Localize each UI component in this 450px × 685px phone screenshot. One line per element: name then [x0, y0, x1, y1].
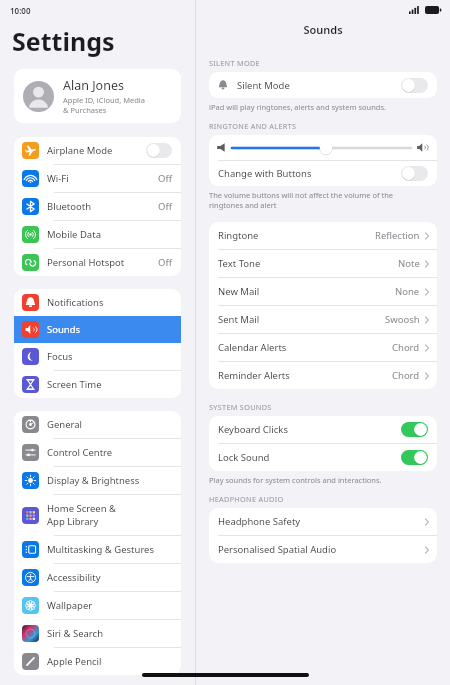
staticText: Multitasking & Gestures: [47, 543, 155, 556]
staticText: Sounds: [47, 323, 81, 336]
staticText: Focus: [47, 350, 73, 363]
staticText: Chord: [392, 341, 420, 354]
staticText: None: [395, 285, 420, 298]
staticText: Swoosh: [385, 313, 420, 326]
staticText: iPad will play ringtones, alerts and sys…: [209, 102, 387, 112]
button[interactable]: Multitasking & Gestures: [14, 536, 181, 563]
staticText: Airplane Mode: [47, 144, 113, 157]
staticText: Siri & Search: [47, 627, 104, 640]
button[interactable]: Toggle on: [401, 422, 428, 437]
button[interactable]: Calendar Alerts: [209, 334, 437, 361]
staticText: Silent Mode: [237, 79, 290, 92]
button[interactable]: Wallpaper: [14, 592, 181, 619]
staticText: App Library: [47, 515, 99, 528]
staticText: Wallpaper: [47, 599, 93, 612]
button[interactable]: Ringtone: [209, 222, 437, 249]
button[interactable]: Bluetooth: [14, 193, 181, 220]
button[interactable]: Wi-Fi: [14, 165, 181, 192]
staticText: Alan Jones: [63, 77, 124, 94]
button[interactable]: Change with Buttons: [209, 161, 437, 186]
staticText: Screen Time: [47, 378, 102, 391]
staticText: The volume buttons will not affect the v…: [209, 190, 394, 200]
staticText: Reflection: [375, 229, 420, 242]
staticText: General: [47, 418, 83, 431]
button[interactable]: Airplane Mode: [14, 137, 181, 164]
button[interactable]: Toggle off: [401, 78, 428, 93]
staticText: Ringtone: [218, 229, 259, 242]
button[interactable]: Notifications: [14, 289, 181, 316]
staticText: Display & Brightness: [47, 474, 140, 487]
staticText: SILENT MODE: [209, 58, 260, 68]
staticText: Headphone Safety: [218, 515, 301, 528]
button[interactable]: Toggle on: [401, 450, 428, 465]
staticText: Change with Buttons: [218, 167, 312, 180]
staticText: Lock Sound: [218, 451, 270, 464]
button[interactable]: Alan Jones: [14, 69, 181, 123]
staticText: ringtones and alert: [209, 200, 277, 210]
button[interactable]: Control Centre: [14, 439, 181, 466]
staticText: Calendar Alerts: [218, 341, 287, 354]
button[interactable]: Text Tone: [209, 250, 437, 277]
button[interactable]: Headphone Safety: [209, 508, 437, 535]
staticText: Reminder Alerts: [218, 369, 290, 382]
button[interactable]: General: [14, 411, 181, 438]
staticText: Wi-Fi: [47, 172, 69, 185]
staticText: Home Screen &: [47, 502, 117, 515]
staticText: Personal Hotspot: [47, 256, 125, 269]
button[interactable]: Display & Brightness: [14, 467, 181, 494]
staticText: Apple Pencil: [47, 655, 102, 668]
button[interactable]: Silent Mode: [209, 72, 437, 98]
staticText: Apple ID, iCloud, Media: [63, 95, 145, 105]
button[interactable]: Toggle off: [401, 166, 428, 181]
staticText: Notifications: [47, 296, 104, 309]
staticText: Off: [158, 256, 172, 269]
button[interactable]: Reminder Alerts: [209, 362, 437, 389]
staticText: Off: [158, 200, 172, 213]
staticText: Chord: [392, 369, 420, 382]
button[interactable]: New Mail: [209, 278, 437, 305]
staticText: RINGTONE AND ALERTS: [209, 121, 297, 131]
staticText: Control Centre: [47, 446, 113, 459]
staticText: Note: [398, 257, 420, 270]
staticText: Personalised Spatial Audio: [218, 543, 337, 556]
staticText: SYSTEM SOUNDS: [209, 402, 272, 412]
staticText: Text Tone: [218, 257, 261, 270]
button[interactable]: Screen Time: [14, 371, 181, 398]
staticText: Play sounds for system controls and inte…: [209, 475, 382, 485]
button[interactable]: Keyboard Clicks: [209, 416, 437, 443]
staticText: Settings: [12, 24, 115, 58]
button[interactable]: Apple Pencil: [14, 648, 181, 675]
staticText: Accessibility: [47, 571, 101, 584]
button[interactable]: Sent Mail: [209, 306, 437, 333]
staticText: Keyboard Clicks: [218, 423, 288, 436]
button[interactable]: Focus: [14, 343, 181, 370]
staticText: & Purchases: [63, 105, 107, 115]
button[interactable]: Accessibility: [14, 564, 181, 591]
staticText: Mobile Data: [47, 228, 101, 241]
button[interactable]: Personalised Spatial Audio: [209, 536, 437, 563]
button[interactable]: Mobile Data: [14, 221, 181, 248]
button[interactable]: Toggle off: [146, 143, 172, 158]
button[interactable]: Siri & Search: [14, 620, 181, 647]
staticText: HEADPHONE AUDIO: [209, 494, 284, 504]
staticText: New Mail: [218, 285, 260, 298]
staticText: Off: [158, 172, 172, 185]
button[interactable]: Sounds: [14, 316, 181, 343]
staticText: Sent Mail: [218, 313, 260, 326]
staticText: Sounds: [196, 22, 450, 37]
button[interactable]: Personal Hotspot: [14, 249, 181, 276]
staticText: Bluetooth: [47, 200, 92, 213]
button[interactable]: Lock Sound: [209, 444, 437, 471]
staticText: 10:00: [10, 5, 31, 16]
button[interactable]: Home Screen &: [14, 495, 181, 535]
